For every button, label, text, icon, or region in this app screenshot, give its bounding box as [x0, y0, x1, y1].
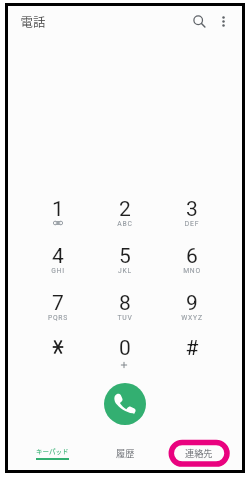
- staticText: 8: [103, 291, 147, 317]
- staticText: 2: [103, 197, 147, 223]
- staticText: WXYZ: [170, 314, 214, 324]
- staticText: 7: [36, 291, 80, 317]
- button[interactable]: [161, 192, 223, 237]
- button[interactable]: Search: [186, 8, 212, 34]
- staticText: GHI: [36, 267, 80, 277]
- staticText: キーパッド: [36, 446, 69, 455]
- staticText: MNO: [170, 267, 214, 277]
- staticText: DEF: [170, 220, 214, 230]
- button[interactable]: [161, 239, 223, 284]
- button[interactable]: More options: [211, 8, 235, 34]
- staticText: 4: [36, 244, 80, 270]
- button[interactable]: [27, 286, 89, 331]
- button[interactable]: Call: [104, 383, 146, 425]
- staticText: PQRS: [36, 314, 80, 324]
- staticText: 3: [170, 197, 214, 223]
- staticText: ABC: [103, 220, 147, 230]
- staticText: 9: [170, 291, 214, 317]
- staticText: 5: [103, 244, 147, 270]
- button[interactable]: [94, 192, 156, 237]
- staticText: 1: [36, 197, 80, 223]
- button[interactable]: [27, 328, 89, 373]
- button[interactable]: 電話: [10, 13, 56, 33]
- staticText: 0: [103, 336, 147, 362]
- staticText: 履歴: [116, 446, 135, 459]
- button[interactable]: [161, 331, 223, 376]
- button[interactable]: [94, 331, 156, 376]
- button[interactable]: 連絡先: [162, 437, 236, 467]
- button[interactable]: [94, 239, 156, 284]
- staticText: JKL: [103, 267, 147, 277]
- staticText: TUV: [103, 314, 147, 324]
- button[interactable]: キーパッド: [15, 436, 89, 470]
- staticText: 6: [170, 244, 214, 270]
- button[interactable]: [27, 192, 89, 237]
- staticText: #: [170, 336, 214, 362]
- staticText: 連絡先: [185, 446, 213, 459]
- button[interactable]: [94, 286, 156, 331]
- button[interactable]: [161, 286, 223, 331]
- button[interactable]: [27, 239, 89, 284]
- button[interactable]: 履歴: [88, 437, 162, 467]
